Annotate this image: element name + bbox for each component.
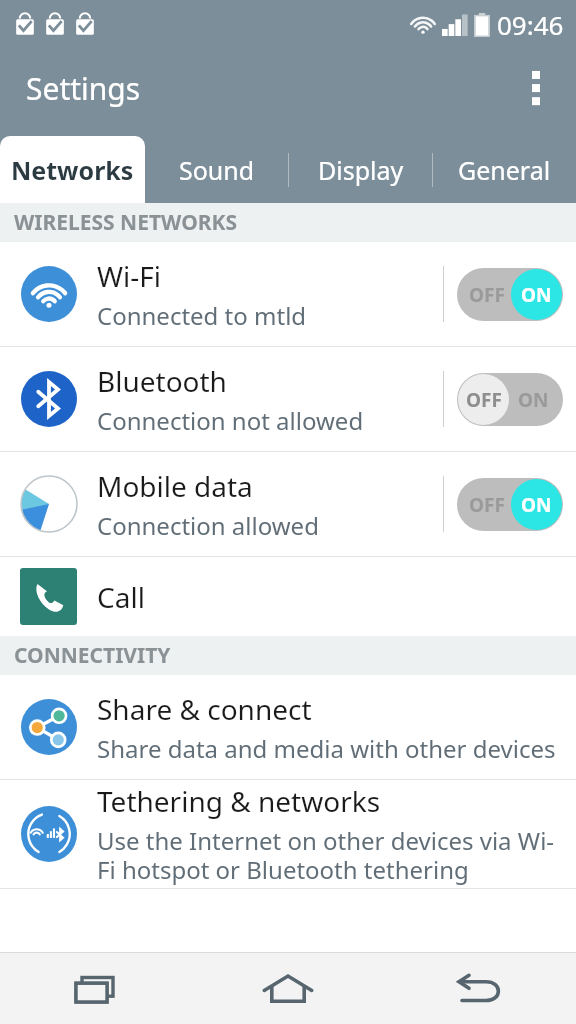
staticText: Share & connect: [97, 690, 312, 728]
staticText: Settings: [26, 68, 141, 109]
staticText: Connection not allowed: [97, 404, 364, 437]
button[interactable]: More options: [512, 64, 560, 112]
staticText: ON: [521, 282, 552, 308]
staticText: Call: [97, 578, 145, 616]
staticText: Share data and media with other devices: [97, 732, 556, 765]
staticText: Display: [318, 153, 404, 187]
button[interactable]: Back: [384, 953, 576, 1024]
button[interactable]: Display: [289, 136, 432, 203]
button[interactable]: Home: [192, 953, 384, 1024]
button[interactable]: Mobile data: [0, 452, 576, 556]
staticText: ON: [521, 492, 552, 518]
button[interactable]: Call: [0, 557, 576, 636]
staticText: WIRELESS NETWORKS: [14, 208, 238, 237]
staticText: Mobile data: [97, 467, 253, 505]
staticText: ON: [518, 387, 549, 413]
staticText: 09:46: [497, 7, 564, 42]
button[interactable]: Recents: [0, 953, 192, 1024]
button[interactable]: OFF: [444, 242, 576, 346]
staticText: Wi-Fi: [97, 257, 162, 295]
button[interactable]: ON: [444, 347, 576, 451]
staticText: CONNECTIVITY: [14, 641, 171, 670]
staticText: OFF: [469, 282, 505, 308]
staticText: Use the Internet on other devices via Wi…: [97, 824, 566, 886]
staticText: General: [458, 153, 551, 187]
button[interactable]: Sound: [145, 136, 288, 203]
button[interactable]: Wi-Fi: [0, 242, 576, 346]
button[interactable]: Bluetooth: [0, 347, 576, 451]
staticText: Bluetooth: [97, 362, 227, 400]
staticText: OFF: [469, 492, 505, 518]
staticText: Networks: [11, 153, 134, 187]
button[interactable]: Networks: [0, 136, 145, 203]
staticText: Connected to mtld: [97, 299, 307, 332]
button[interactable]: Tethering & networks: [0, 780, 576, 888]
button[interactable]: OFF: [444, 452, 576, 556]
staticText: Sound: [179, 153, 255, 187]
button[interactable]: General: [433, 136, 576, 203]
staticText: OFF: [466, 387, 502, 413]
staticText: Tethering & networks: [97, 782, 381, 820]
button[interactable]: Share & connect: [0, 675, 576, 779]
staticText: Connection allowed: [97, 509, 319, 542]
